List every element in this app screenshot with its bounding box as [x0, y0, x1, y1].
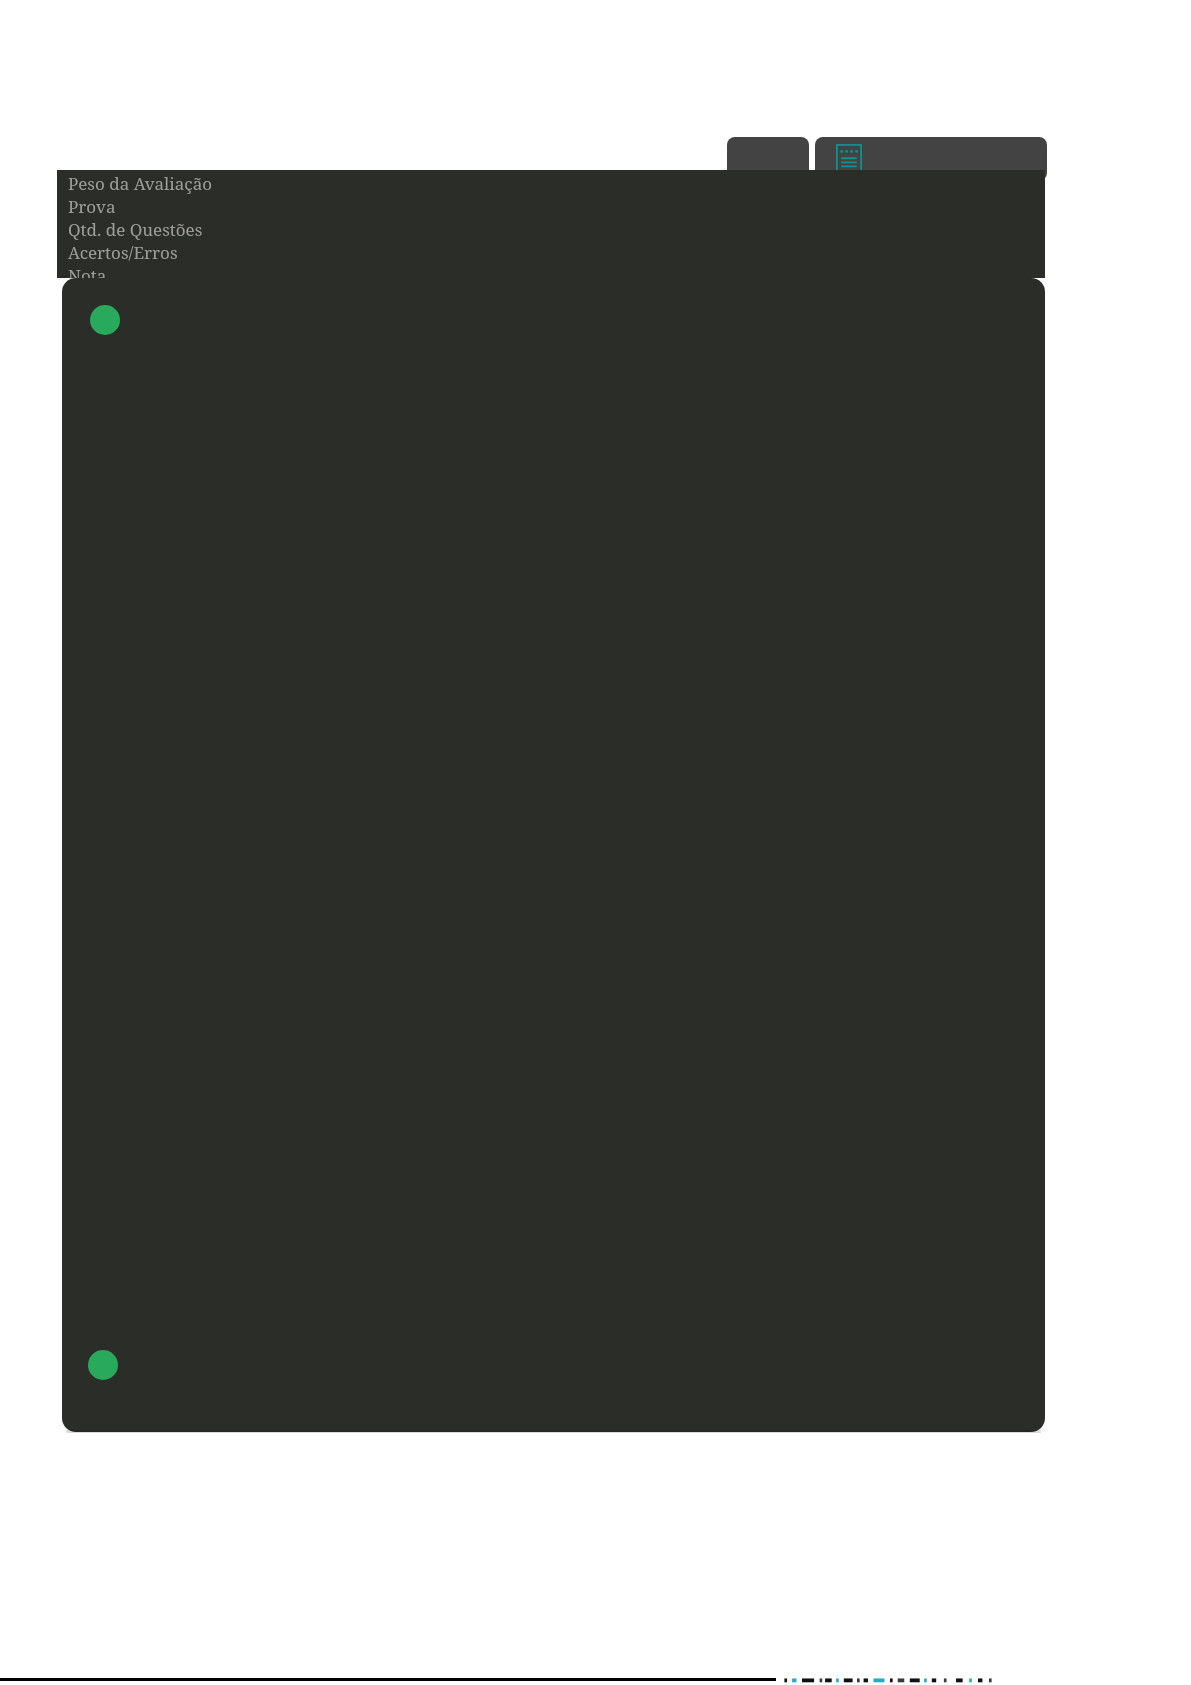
button[interactable]: Status aprovado	[88, 1350, 118, 1380]
button[interactable]: Menu	[727, 137, 809, 181]
staticText: Acertos/Erros	[68, 241, 178, 264]
button[interactable]: Status aprovado	[62, 278, 1045, 1432]
staticText: Qtd. de Questões	[68, 218, 203, 241]
staticText: Nota	[68, 264, 107, 280]
button[interactable]: Status aprovado	[90, 305, 120, 335]
button[interactable]: Documento	[815, 137, 1047, 181]
staticText: Prova	[68, 195, 116, 218]
staticText: Peso da Avaliação	[68, 172, 213, 195]
